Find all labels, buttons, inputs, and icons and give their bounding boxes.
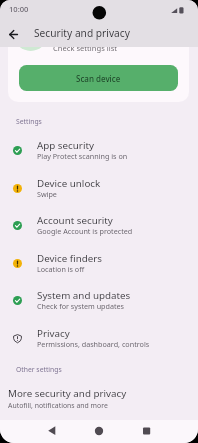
- staticText: Check for system updates: [37, 301, 125, 311]
- staticText: Autofill, notifications and more: [8, 401, 108, 410]
- button[interactable]: Device finders: [0, 244, 198, 282]
- staticText: More security and privacy: [8, 387, 127, 400]
- staticText: Device finders: [37, 252, 103, 265]
- button[interactable]: More security and privacy: [0, 387, 198, 410]
- staticText: Device unlock: [37, 177, 101, 190]
- staticText: App security: [37, 139, 94, 152]
- button[interactable]: Device unlock: [0, 169, 198, 207]
- staticText: Security and privacy: [34, 26, 130, 40]
- staticText: Check settings list: [53, 47, 118, 53]
- button[interactable]: App security: [0, 131, 198, 169]
- button[interactable]: Account security: [0, 206, 198, 244]
- staticText: Scan device: [76, 73, 121, 84]
- staticText: Location is off: [37, 264, 85, 274]
- button[interactable]: Scan device: [19, 65, 178, 91]
- staticText: Google Account is protected: [37, 226, 133, 236]
- button[interactable]: [4, 24, 25, 45]
- staticText: Other settings: [16, 365, 62, 374]
- button[interactable]: Privacy: [0, 319, 198, 357]
- staticText: Permissions, dashboard, controls: [37, 339, 150, 349]
- button[interactable]: System and updates: [0, 281, 198, 319]
- staticText: Play Protect scanning is on: [37, 151, 128, 161]
- staticText: Settings: [16, 117, 42, 126]
- staticText: 10:00: [9, 4, 29, 14]
- staticText: Account security: [37, 214, 113, 227]
- staticText: Privacy: [37, 327, 70, 340]
- staticText: System and updates: [37, 289, 131, 302]
- staticText: Swipe: [37, 189, 57, 199]
